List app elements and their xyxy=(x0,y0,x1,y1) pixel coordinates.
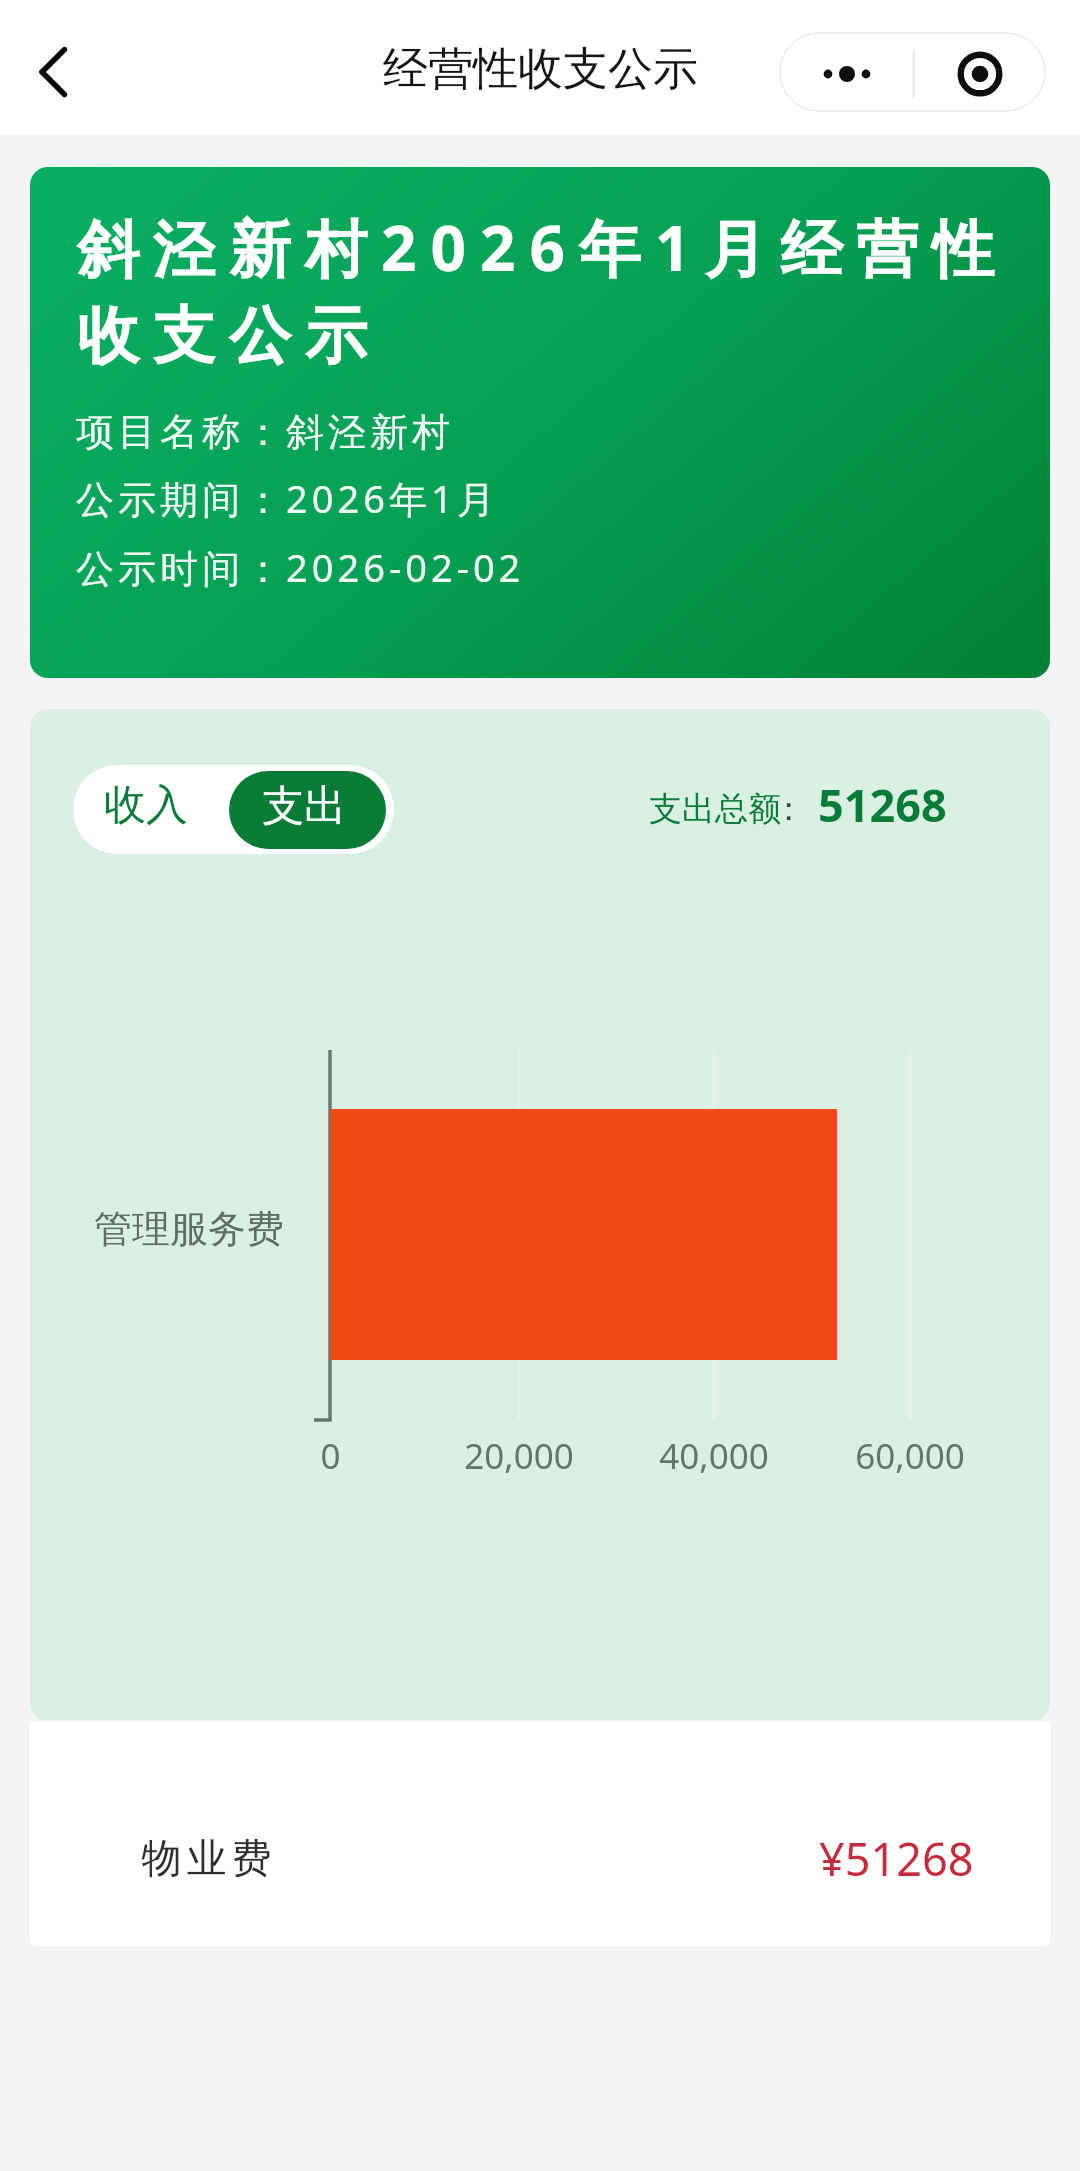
staticText: 斜泾新村2026年1月经营性 收支公示 xyxy=(77,205,1009,376)
staticText: 支出 xyxy=(262,780,346,833)
button[interactable]: 收入 xyxy=(73,765,237,854)
button[interactable]: 支出 xyxy=(229,771,386,849)
staticText: 40,000 xyxy=(659,1432,769,1480)
staticText: 支出总额 xyxy=(649,788,781,830)
staticText: ： xyxy=(772,788,805,830)
button[interactable]: More options xyxy=(779,32,1046,112)
staticText: 项目名称：斜泾新村 公示期间：2026年1月 公示时间：2026-02-02 xyxy=(76,408,525,593)
button[interactable]: 物业费 xyxy=(30,1722,1050,1946)
staticText: 经营性收支公示 xyxy=(383,41,698,98)
staticText: 0 xyxy=(320,1432,341,1480)
staticText: 20,000 xyxy=(464,1432,574,1480)
staticText: ¥51268 xyxy=(819,1828,974,1889)
staticText: 管理服务费 xyxy=(94,1205,284,1253)
button[interactable]: Back xyxy=(0,22,90,112)
staticText: 物业费 xyxy=(139,1833,274,1883)
staticText: 51268 xyxy=(818,774,947,835)
staticText: 收入 xyxy=(104,779,188,832)
staticText: 60,000 xyxy=(855,1432,965,1480)
